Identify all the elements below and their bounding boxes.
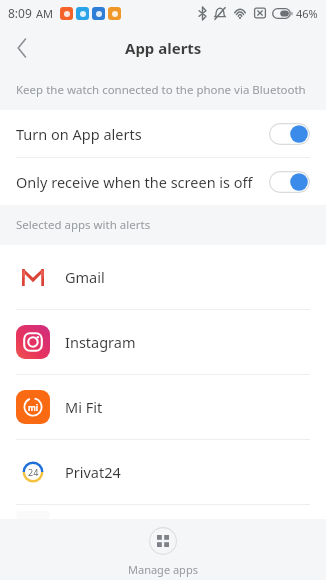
staticText: mi [28,402,39,413]
staticText: 46% [296,6,318,21]
button[interactable]: Only receive when the screen is off [0,158,326,205]
button[interactable]: mi [0,375,326,439]
staticText: App alerts [125,38,202,58]
button[interactable]: Gmail [0,245,326,309]
staticText: 24 [28,466,39,478]
other: Toggle [269,123,310,145]
staticText: Instagram [65,332,136,352]
staticText: Manage apps [128,562,198,577]
staticText: Gmail [65,267,105,287]
button[interactable]: Turn on App alerts [0,110,326,157]
staticText: Keep the watch connected to the phone vi… [16,82,306,98]
button[interactable]: Back [0,26,44,70]
staticText: 8:09 [8,5,32,21]
staticText: Turn on App alerts [16,124,142,144]
staticText: Privat24 [65,462,121,482]
staticText: Mi Fit [65,397,103,417]
other: Toggle [269,171,310,193]
button[interactable]: Instagram [0,310,326,374]
staticText: Only receive when the screen is off [16,172,253,192]
staticText: Selected apps with alerts [16,217,151,233]
staticText: AM [36,6,54,21]
button[interactable]: Manage apps [0,519,326,580]
button[interactable]: 24 [0,440,326,504]
